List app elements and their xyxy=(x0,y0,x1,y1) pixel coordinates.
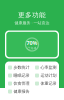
staticText: 心率监测 xyxy=(41,65,57,70)
staticText: 健康报告 xyxy=(14,89,30,94)
staticText: 更多功能 xyxy=(18,11,46,19)
button[interactable]: 睡眠记录 xyxy=(5,71,32,79)
staticText: 运动计划 xyxy=(41,73,57,78)
staticText: 饮食管理 xyxy=(14,81,30,86)
button[interactable]: 健康报告 xyxy=(5,87,32,95)
button[interactable]: 心率监测 xyxy=(32,63,59,71)
staticText: 睡眠记录 xyxy=(14,73,30,78)
staticText: 70% xyxy=(26,39,37,46)
button[interactable]: 饮食管理 xyxy=(5,79,32,87)
staticText: 健康服务 · 一站直达 xyxy=(14,20,49,25)
staticText: 体重记录 xyxy=(41,81,57,86)
button[interactable]: 体重记录 xyxy=(32,79,59,87)
button[interactable]: 运动计划 xyxy=(32,71,59,79)
button[interactable]: 步数统计 xyxy=(5,63,32,71)
staticText: 已完成 xyxy=(27,46,36,50)
staticText: 步数统计 xyxy=(14,65,30,70)
